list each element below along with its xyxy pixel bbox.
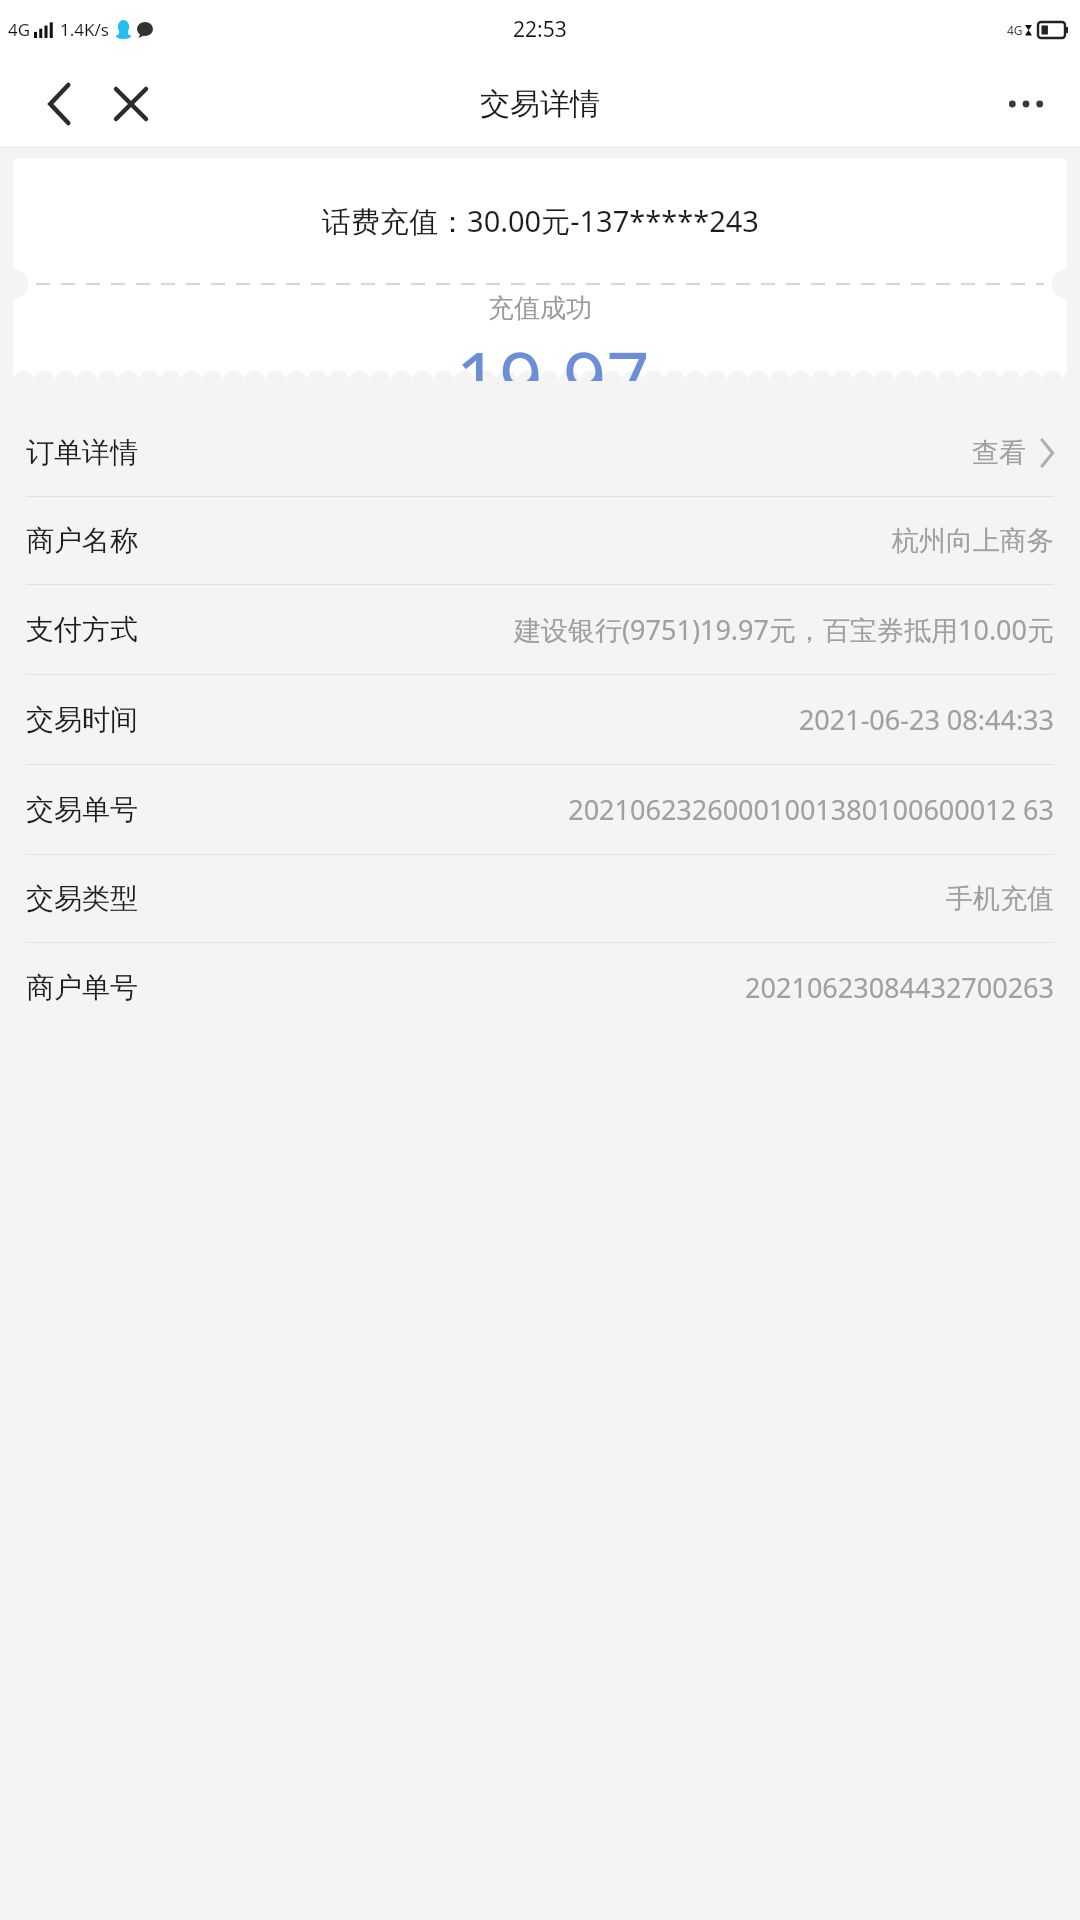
button[interactable]: 订单详情 [26, 409, 1054, 496]
button[interactable]: 交易时间 [26, 675, 1054, 764]
button[interactable]: More options [996, 74, 1056, 134]
staticText: 话费充值：30.00元-137*****243 [322, 201, 759, 241]
staticText: 交易详情 [480, 85, 600, 123]
staticText: 交易单号 [26, 792, 138, 827]
button[interactable]: 商户名称 [26, 497, 1054, 584]
staticText: 2021-06-23 08:44:33 [798, 701, 1054, 738]
staticText: 交易类型 [26, 881, 138, 916]
staticText: 交易时间 [26, 702, 138, 737]
staticText: 4G [1007, 22, 1023, 38]
button[interactable]: 交易单号 [26, 765, 1054, 854]
staticText: -19.97 [431, 327, 650, 381]
button[interactable]: Back [30, 75, 88, 133]
staticText: 20210623084432700263 [745, 969, 1054, 1006]
staticText: 订单详情 [26, 435, 138, 470]
button[interactable]: 交易类型 [26, 855, 1054, 942]
button[interactable]: 支付方式 [26, 585, 1054, 674]
staticText: 杭州向上商务 [892, 524, 1054, 558]
button[interactable]: 商户单号 [26, 943, 1054, 1032]
staticText: 手机充值 [946, 882, 1054, 916]
button[interactable]: Close [102, 75, 160, 133]
staticText: 查看 [972, 436, 1026, 470]
staticText: 支付方式 [26, 612, 138, 647]
staticText: 22:53 [513, 15, 567, 44]
staticText: 充值成功 [488, 292, 592, 325]
staticText: 20210623260001001380100600012 63 [568, 791, 1054, 828]
staticText: 商户名称 [26, 523, 138, 558]
staticText: 4G [8, 18, 31, 41]
staticText: 商户单号 [26, 970, 138, 1005]
staticText: 1.4K/s [60, 18, 109, 41]
staticText: 建设银行(9751)19.97元，百宝券抵用10.00元 [514, 611, 1054, 648]
